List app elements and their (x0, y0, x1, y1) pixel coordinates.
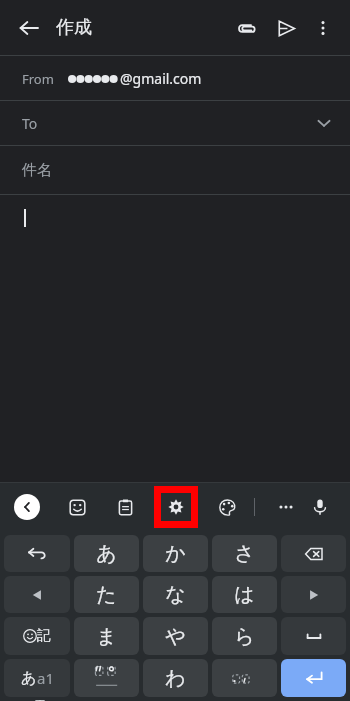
button[interactable]: ま (74, 617, 139, 655)
button[interactable]: ら (212, 617, 277, 655)
button[interactable]: Stickers (62, 492, 92, 522)
button[interactable] (281, 659, 346, 697)
button[interactable] (4, 535, 70, 572)
button[interactable]: な (143, 576, 208, 613)
button[interactable]: Attach file (228, 10, 264, 46)
button[interactable]: To (0, 101, 350, 145)
staticText: ら (234, 624, 255, 649)
staticText: は (234, 582, 255, 607)
button[interactable] (281, 617, 346, 655)
staticText: さ (234, 541, 255, 566)
staticText: た (96, 582, 117, 607)
button[interactable]: Voice input (304, 491, 336, 523)
button[interactable]: Collapse toolbar (14, 494, 40, 520)
staticText: 記 (37, 627, 51, 645)
button[interactable] (281, 535, 346, 572)
staticText: To (22, 114, 38, 133)
button[interactable]: や (143, 617, 208, 655)
staticText: や (165, 624, 186, 649)
button[interactable]: Clipboard (110, 492, 140, 522)
staticText: わ (165, 666, 186, 691)
staticText: な (165, 582, 186, 607)
button[interactable] (0, 195, 350, 482)
button[interactable]: More (271, 492, 301, 522)
staticText: From (22, 70, 54, 88)
staticText: か (165, 541, 186, 566)
button[interactable]: 件名 (22, 146, 350, 194)
button[interactable] (4, 576, 70, 613)
button[interactable] (212, 659, 277, 697)
button[interactable]: Settings (161, 493, 191, 521)
button[interactable]: Send (268, 10, 304, 46)
staticText: あ (96, 541, 117, 566)
button[interactable]: わ (143, 659, 208, 697)
button[interactable] (74, 659, 139, 697)
staticText: ま (96, 624, 117, 649)
button[interactable]: は (212, 576, 277, 613)
button[interactable]: Themes (212, 492, 242, 522)
button[interactable]: More options (306, 11, 340, 45)
button[interactable]: さ (212, 535, 277, 572)
button[interactable]: あ (74, 535, 139, 572)
button[interactable]: か (143, 535, 208, 572)
staticText: 件名 (22, 161, 52, 180)
staticText: a1 (37, 668, 54, 688)
staticText: 作成 (56, 16, 92, 39)
staticText: あ (21, 669, 37, 688)
button[interactable] (281, 576, 346, 613)
button[interactable]: あ (4, 659, 70, 697)
button[interactable]: Back (10, 9, 48, 47)
button[interactable]: From (0, 56, 350, 100)
button[interactable]: た (74, 576, 139, 613)
staticText: @gmail.com (120, 69, 202, 88)
button[interactable]: 記 (4, 617, 70, 655)
